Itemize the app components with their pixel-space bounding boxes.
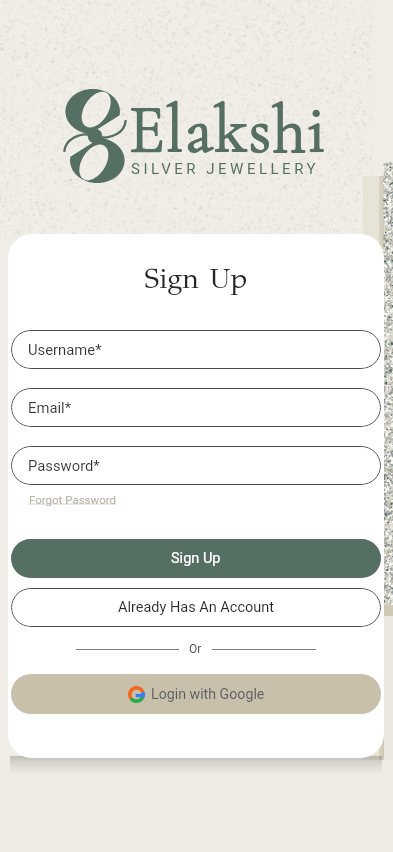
button[interactable]: Email* [11,388,381,427]
button[interactable]: Google logo [11,674,381,714]
staticText: Or [189,642,202,656]
staticText: Forgot Password [29,493,117,506]
staticText: Username* [28,341,102,358]
button[interactable]: Username* [11,330,381,369]
staticText: Already Has An Account [118,599,275,616]
button[interactable]: Sign Up [11,539,381,578]
button[interactable]: Password* [11,446,381,485]
button[interactable]: Forgot Password [29,493,117,506]
staticText: Password* [28,457,100,474]
button[interactable]: Already Has An Account [11,588,381,627]
staticText: Sign Up [171,550,221,567]
staticText: Login with Google [151,686,265,703]
other: Google logo [128,686,145,703]
staticText: Sign Up [8,261,384,296]
staticText: Elakshi [129,89,327,170]
staticText: Email* [28,399,72,416]
staticText: SILVER JEWELLERY [131,160,320,178]
